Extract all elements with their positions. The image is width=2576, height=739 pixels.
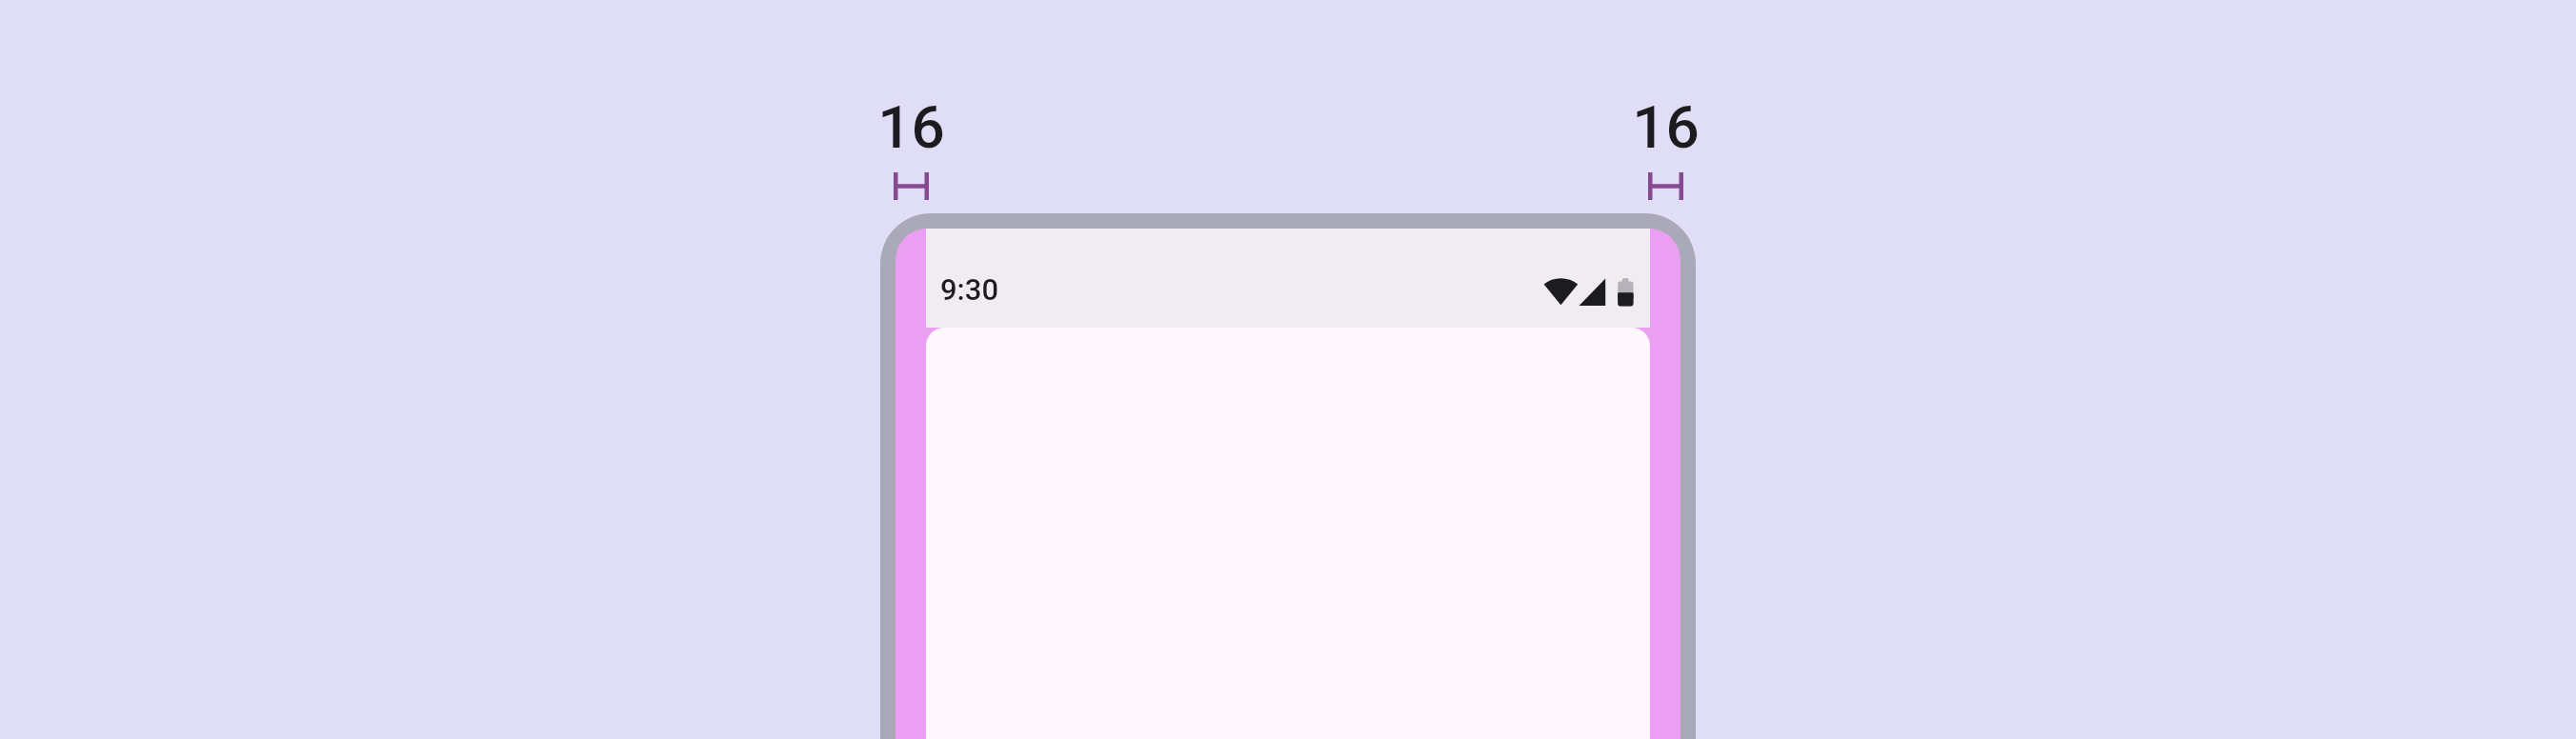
staticText: 16 — [1632, 92, 1700, 162]
button[interactable]: Wi-Fi, mobile signal and battery status — [1544, 278, 1633, 308]
staticText: 16 — [877, 92, 945, 162]
button[interactable]: 9:30 — [926, 229, 1650, 328]
staticText: 9:30 — [940, 272, 999, 307]
